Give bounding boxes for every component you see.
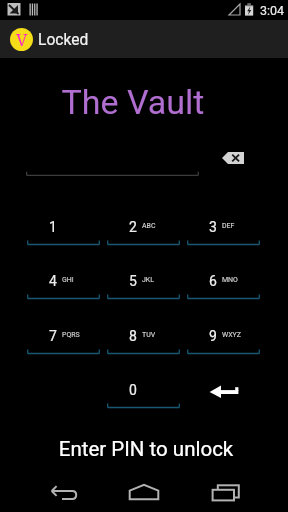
staticText: 9 — [209, 328, 217, 344]
staticText: Enter PIN to unlock — [2, 437, 288, 461]
button[interactable]: Home — [120, 469, 168, 507]
button[interactable]: 9 — [187, 312, 260, 356]
button[interactable]: 7 — [27, 312, 100, 356]
staticText: PQRS — [62, 331, 80, 339]
staticText: 3 — [209, 219, 217, 235]
button[interactable]: 1 — [27, 203, 100, 247]
staticText: JKL — [142, 276, 155, 284]
staticText: 1 — [49, 219, 57, 235]
staticText: 3:04 — [260, 3, 285, 18]
staticText: TUV — [142, 331, 156, 339]
button[interactable]: 2 — [107, 203, 180, 247]
button[interactable]: 6 — [187, 257, 260, 301]
staticText: MNO — [222, 276, 238, 284]
staticText: 8 — [129, 328, 137, 344]
button[interactable]: 8 — [107, 312, 180, 356]
staticText: DEF — [222, 222, 235, 230]
staticText: 5 — [129, 273, 137, 289]
staticText: The Vault — [0, 82, 277, 122]
button[interactable]: 0 — [107, 366, 180, 410]
staticText: WXYZ — [222, 331, 241, 339]
staticText: V — [16, 28, 28, 51]
staticText: 7 — [49, 328, 57, 344]
staticText: 0 — [129, 382, 137, 398]
button[interactable]: 4 — [27, 257, 100, 301]
button[interactable]: Enter — [187, 366, 260, 410]
staticText: 6 — [209, 273, 217, 289]
button[interactable]: Recents — [196, 469, 244, 507]
button[interactable]: 5 — [107, 257, 180, 301]
button[interactable]: Back — [40, 469, 88, 507]
staticText: 4 — [49, 273, 57, 289]
staticText: Locked — [38, 31, 89, 49]
staticText: ABC — [142, 222, 156, 230]
button[interactable]: 3 — [187, 203, 260, 247]
staticText: 2 — [129, 219, 137, 235]
button[interactable]: PIN entry — [26, 145, 199, 177]
button[interactable]: Delete — [216, 146, 250, 170]
staticText: GHI — [62, 276, 74, 284]
